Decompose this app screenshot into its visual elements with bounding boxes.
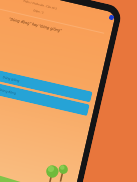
staticText: Dùng giồng <box>2 75 21 83</box>
staticText: Dùng đồng <box>0 88 17 96</box>
staticText: Phần 1 Phiên âm - Câu số 3 <box>23 0 58 11</box>
button[interactable]: Dùng giồng <box>0 60 93 102</box>
button[interactable]: Dùng đồng <box>0 72 90 116</box>
staticText: “Dùng đồng” hay “dùng giồng” <box>8 16 62 33</box>
other: Camera <box>108 14 114 20</box>
staticText: Điểm : 3 <box>33 8 45 15</box>
